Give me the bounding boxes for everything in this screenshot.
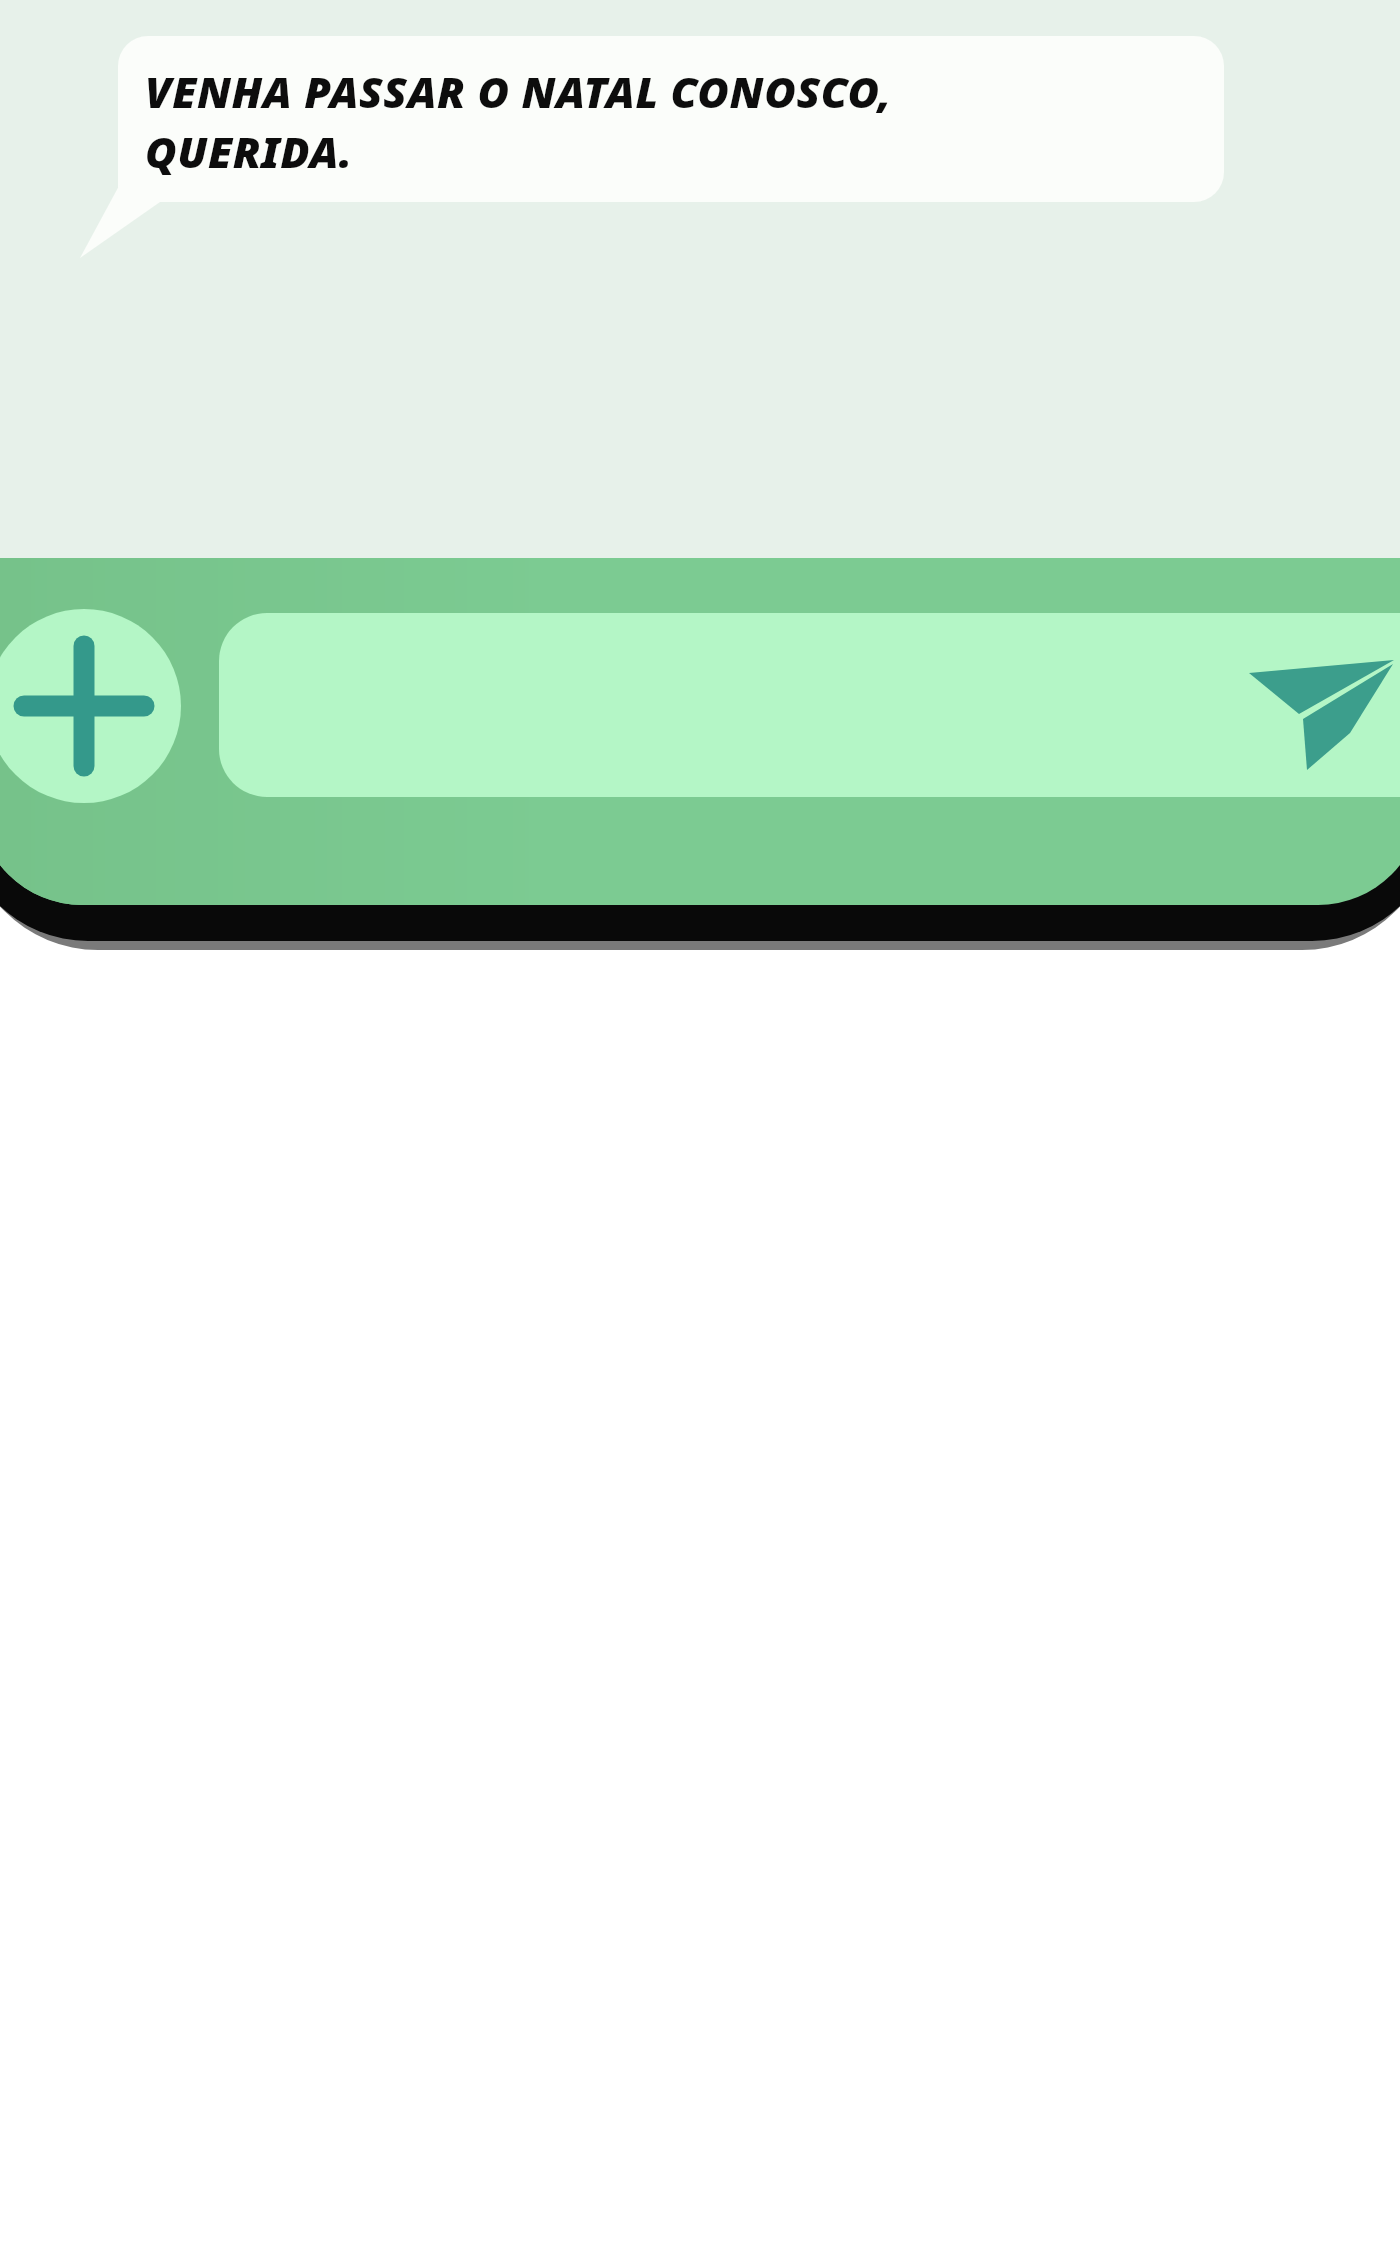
- button[interactable]: Add attachment: [0, 609, 181, 803]
- button[interactable]: Send message: [1232, 633, 1400, 797]
- button[interactable]: VENHA PASSAR O NATAL CONOSCO, QUERIDA.: [118, 36, 1224, 204]
- staticText: VENHA PASSAR O NATAL CONOSCO, QUERIDA.: [145, 62, 892, 181]
- button[interactable]: Message input field: [219, 613, 1229, 797]
